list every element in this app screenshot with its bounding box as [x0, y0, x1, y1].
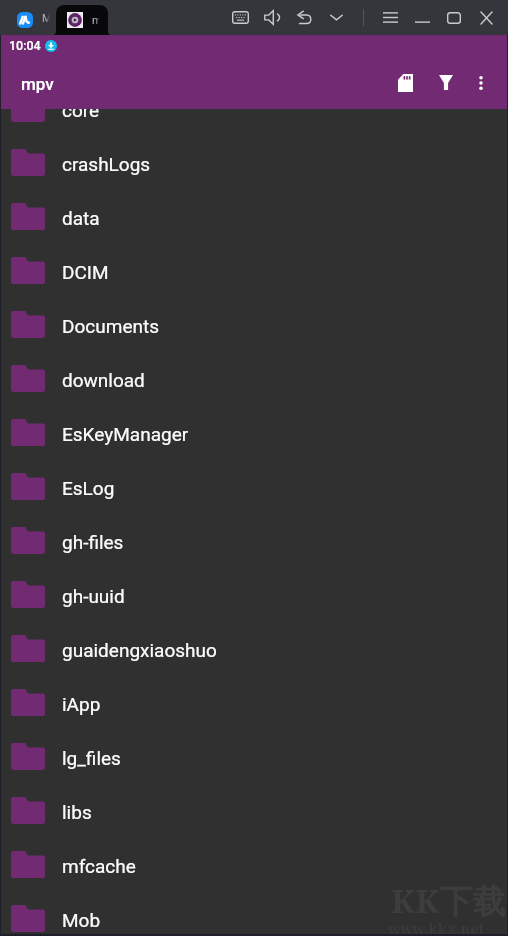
button[interactable]: libs [1, 783, 507, 837]
button[interactable]: Back [288, 0, 320, 35]
staticText: gh-files [62, 531, 124, 553]
staticText: Mob [62, 909, 101, 931]
button[interactable]: DCIM [1, 243, 507, 297]
staticText: core [62, 99, 100, 121]
staticText: 10:04 [9, 38, 41, 53]
staticText: Documents [62, 315, 159, 337]
button[interactable]: mfcache [1, 837, 507, 891]
staticText: www.kkx.net [388, 918, 485, 936]
staticText: download [62, 369, 145, 391]
button[interactable]: EsLog [1, 459, 507, 513]
button[interactable]: Volume [256, 0, 288, 35]
button[interactable]: gh-files [1, 513, 507, 567]
button[interactable]: crashLogs [1, 135, 507, 189]
staticText: mfcache [62, 855, 136, 877]
staticText: libs [62, 801, 92, 823]
button[interactable]: Menu [374, 0, 406, 35]
staticText: iApp [62, 693, 101, 715]
staticText: mpv [21, 74, 54, 94]
staticText: DCIM [62, 261, 109, 283]
button[interactable]: Show keyboard [224, 0, 256, 35]
button[interactable]: Maximize [438, 0, 470, 35]
button[interactable]: Close [470, 0, 502, 35]
button[interactable]: iApp [1, 675, 507, 729]
button[interactable]: data [1, 189, 507, 243]
button[interactable]: Filter [430, 56, 461, 109]
button[interactable]: gh-uuid [1, 567, 507, 621]
staticText: crashLogs [62, 153, 151, 175]
staticText: lg_files [62, 747, 121, 769]
button[interactable]: Minimize [406, 0, 438, 35]
staticText: gh-uuid [62, 585, 125, 607]
button[interactable]: Show more [320, 0, 352, 35]
button[interactable]: download [1, 351, 507, 405]
button[interactable]: Documents [1, 297, 507, 351]
button[interactable]: More options [461, 56, 501, 109]
staticText: mpv [92, 14, 100, 27]
button[interactable]: EsKeyManager [1, 405, 507, 459]
button[interactable]: lg_files [1, 729, 507, 783]
staticText: guaidengxiaoshuo [62, 639, 217, 661]
button[interactable]: SD card [380, 56, 430, 109]
button[interactable]: guaidengxiaoshuo [1, 621, 507, 675]
staticText: Mumu [42, 12, 50, 25]
button[interactable]: Mumu [0, 0, 57, 35]
staticText: data [62, 207, 100, 229]
staticText: EsKeyManager [62, 423, 189, 445]
button[interactable]: core [1, 81, 507, 135]
button[interactable]: mpv [56, 5, 108, 35]
staticText: EsLog [62, 477, 115, 499]
button[interactable]: Mob [1, 891, 507, 936]
staticText: KK下载 [391, 878, 506, 923]
